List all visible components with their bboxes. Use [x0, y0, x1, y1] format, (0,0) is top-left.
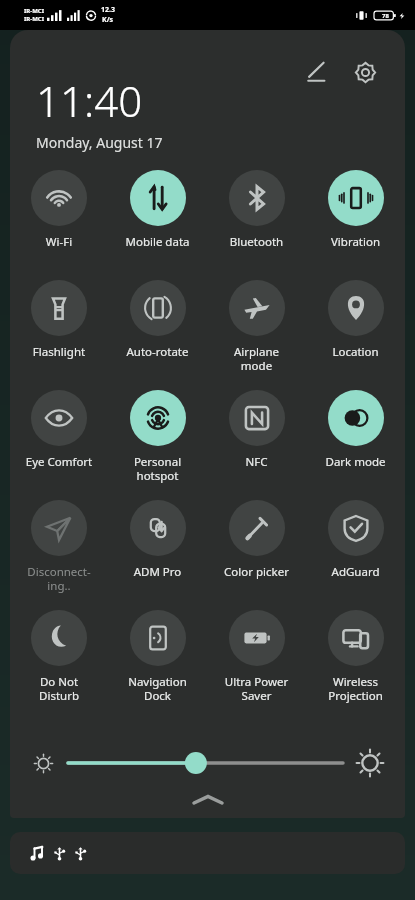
button[interactable]: ADM Pro — [108, 490, 207, 600]
button[interactable]: Dark mode — [306, 380, 405, 490]
staticText: 11:40 — [36, 72, 143, 129]
button[interactable]: Wireless Projection — [306, 600, 405, 710]
button[interactable]: Wi-Fi — [10, 160, 108, 270]
staticText: Do Not Disturb — [12, 674, 106, 703]
button[interactable]: Ultra Power Saver — [207, 600, 306, 710]
staticText: NFC — [209, 454, 304, 470]
staticText: Wi-Fi — [12, 234, 106, 250]
button[interactable]: Color picker — [207, 490, 306, 600]
staticText: Ultra Power Saver — [209, 674, 304, 703]
staticText: 78 — [382, 12, 389, 20]
button[interactable]: AdGuard — [306, 490, 405, 600]
button[interactable]: Eye Comfort — [10, 380, 108, 490]
button[interactable]: High brightness — [353, 746, 387, 780]
staticText: Monday, August 17 — [36, 133, 163, 152]
button[interactable]: NFC — [207, 380, 306, 490]
button[interactable]: Edit — [297, 52, 337, 92]
button[interactable]: Navigation Dock — [108, 600, 207, 710]
button[interactable]: Low brightness — [28, 748, 58, 778]
staticText: Location — [308, 344, 403, 360]
button[interactable]: Location — [306, 270, 405, 380]
staticText: Airplane mode — [209, 344, 304, 373]
staticText: Color picker — [209, 564, 304, 580]
staticText: Dark mode — [308, 454, 403, 470]
staticText: Personal hotspot — [110, 454, 205, 483]
staticText: Mobile data — [110, 234, 205, 250]
button[interactable] — [10, 832, 405, 874]
staticText: IR-MCI — [24, 15, 45, 23]
staticText: Auto-rotate — [110, 344, 205, 360]
button[interactable] — [68, 748, 343, 778]
staticText: Flashlight — [12, 344, 106, 360]
staticText: 12.3 — [101, 5, 115, 15]
button[interactable]: Disconnect- ing.. — [10, 490, 108, 600]
button[interactable]: Airplane mode — [207, 270, 306, 380]
staticText: AdGuard — [308, 564, 403, 580]
staticText: Bluetooth — [209, 234, 304, 250]
staticText: Eye Comfort — [12, 454, 106, 470]
button[interactable]: Mobile data — [108, 160, 207, 270]
button[interactable]: Auto-rotate — [108, 270, 207, 380]
staticText: Navigation Dock — [110, 674, 205, 703]
staticText: ADM Pro — [110, 564, 205, 580]
staticText: K/s — [102, 15, 114, 25]
button[interactable]: Do Not Disturb — [10, 600, 108, 710]
staticText: IR-MCI — [24, 7, 45, 15]
button[interactable]: Bluetooth — [207, 160, 306, 270]
button[interactable]: Vibration — [306, 160, 405, 270]
staticText: Vibration — [308, 234, 403, 250]
staticText: Wireless Projection — [308, 674, 403, 703]
button[interactable]: Settings — [345, 52, 385, 92]
staticText: Disconnect- ing.. — [12, 564, 106, 593]
button[interactable]: Flashlight — [10, 270, 108, 380]
button[interactable]: Personal hotspot — [108, 380, 207, 490]
